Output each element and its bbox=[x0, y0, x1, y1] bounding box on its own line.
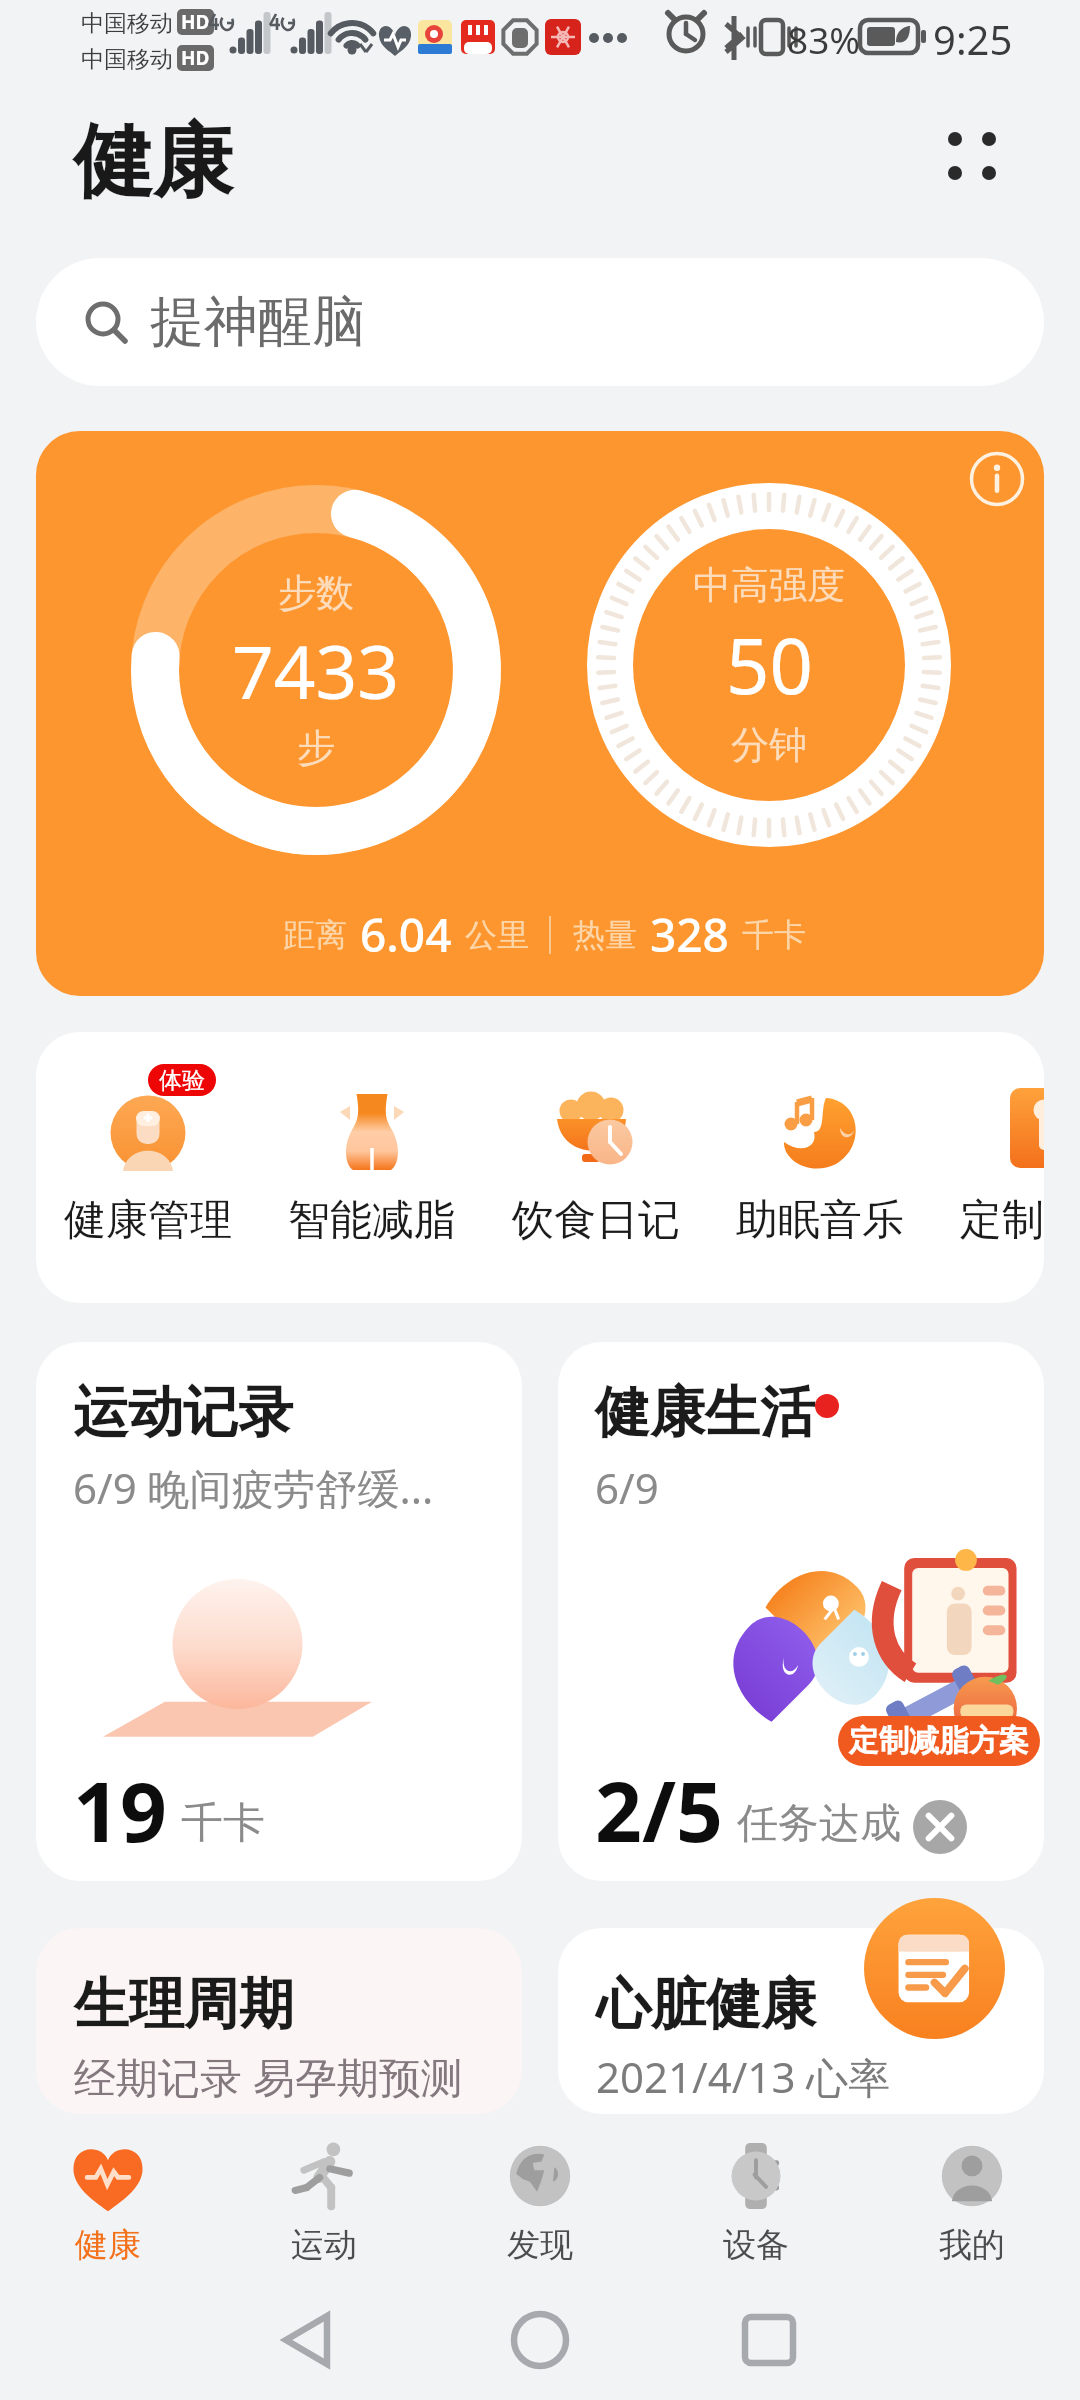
staticText: 运动记录 bbox=[73, 1378, 293, 1447]
staticText: 19 bbox=[73, 1754, 167, 1866]
button[interactable]: Info bbox=[36, 431, 1044, 996]
staticText: 6/9 晚间疲劳舒缓... bbox=[73, 1459, 434, 1516]
button[interactable]: 提神醒脑 bbox=[36, 258, 1044, 386]
staticText: 健康管理 bbox=[64, 1194, 232, 1247]
staticText: 步数 bbox=[278, 569, 354, 617]
staticText: 50 bbox=[726, 613, 813, 717]
staticText: 中国移动 bbox=[81, 45, 173, 74]
staticText: 中国移动 bbox=[81, 9, 173, 38]
staticText: 健康生活 bbox=[595, 1378, 815, 1447]
button[interactable]: 体验 bbox=[36, 1072, 260, 1247]
button[interactable]: Info bbox=[969, 451, 1025, 507]
staticText: 体验 bbox=[159, 1066, 205, 1095]
staticText: 9:25 bbox=[933, 12, 1013, 66]
staticText: 我的 bbox=[939, 2224, 1005, 2266]
staticText: 定制中心 bbox=[960, 1194, 1044, 1247]
staticText: 智能减脂 bbox=[288, 1194, 456, 1247]
button[interactable]: 发现 bbox=[432, 2140, 648, 2266]
staticText: 健康 bbox=[75, 2224, 141, 2266]
staticText: 千卡 bbox=[181, 1797, 265, 1850]
staticText: 任务达成 bbox=[737, 1798, 901, 1850]
staticText: 运动 bbox=[291, 2224, 357, 2266]
staticText: 2/5 bbox=[595, 1754, 723, 1866]
button[interactable]: 心脏健康 bbox=[558, 1928, 1044, 2114]
staticText: 分钟 bbox=[731, 721, 807, 769]
staticText: 2021/4/13 心率 bbox=[596, 2048, 891, 2105]
button[interactable]: Home bbox=[480, 2280, 600, 2400]
staticText: 生理周期 bbox=[74, 1970, 294, 2039]
button[interactable]: 助眠音乐 bbox=[708, 1072, 932, 1247]
button[interactable]: Back bbox=[247, 2280, 367, 2400]
staticText: 步 bbox=[297, 724, 335, 772]
button[interactable]: Recent apps bbox=[709, 2280, 829, 2400]
staticText: HD bbox=[181, 45, 210, 71]
staticText: 热量 bbox=[573, 915, 637, 955]
staticText: 公里 bbox=[465, 915, 529, 955]
staticText: 经期记录 易孕期预测 bbox=[74, 2048, 463, 2105]
staticText: 心脏健康 bbox=[596, 1970, 816, 2039]
staticText: 7433 bbox=[232, 621, 400, 720]
staticText: 健康 bbox=[73, 112, 233, 213]
staticText: 328 bbox=[650, 903, 729, 966]
staticText: 提神醒脑 bbox=[150, 288, 366, 356]
staticText: 发现 bbox=[507, 2224, 573, 2266]
button[interactable]: 运动 bbox=[216, 2140, 432, 2266]
button[interactable]: 运动记录 bbox=[36, 1342, 522, 1881]
button[interactable]: More options bbox=[932, 116, 1012, 196]
button[interactable]: 定制中心 bbox=[932, 1072, 1044, 1247]
staticText: 中高强度 bbox=[693, 561, 845, 609]
button[interactable]: 智能减脂 bbox=[260, 1072, 484, 1247]
button[interactable]: 健康 bbox=[0, 2140, 216, 2266]
button[interactable]: 设备 bbox=[648, 2140, 864, 2266]
staticText: 6/9 bbox=[595, 1459, 659, 1516]
staticText: 定制减脂方案 bbox=[849, 1722, 1029, 1760]
staticText: 助眠音乐 bbox=[736, 1194, 904, 1247]
staticText: 饮食日记 bbox=[512, 1194, 680, 1247]
staticText: 83% bbox=[787, 14, 861, 64]
button[interactable]: 饮食日记 bbox=[484, 1072, 708, 1247]
button[interactable]: 生理周期 bbox=[36, 1928, 522, 2114]
button[interactable]: 我的 bbox=[864, 2140, 1080, 2266]
button[interactable]: 健康生活 bbox=[558, 1342, 1044, 1881]
staticText: 6.04 bbox=[360, 903, 452, 966]
staticText: 距离 bbox=[283, 915, 347, 955]
staticText: HD bbox=[181, 9, 210, 35]
staticText: 千卡 bbox=[742, 915, 806, 955]
button[interactable]: Close bbox=[913, 1800, 967, 1854]
button[interactable]: Health tasks bbox=[864, 1898, 1005, 2039]
staticText: 设备 bbox=[723, 2224, 789, 2266]
